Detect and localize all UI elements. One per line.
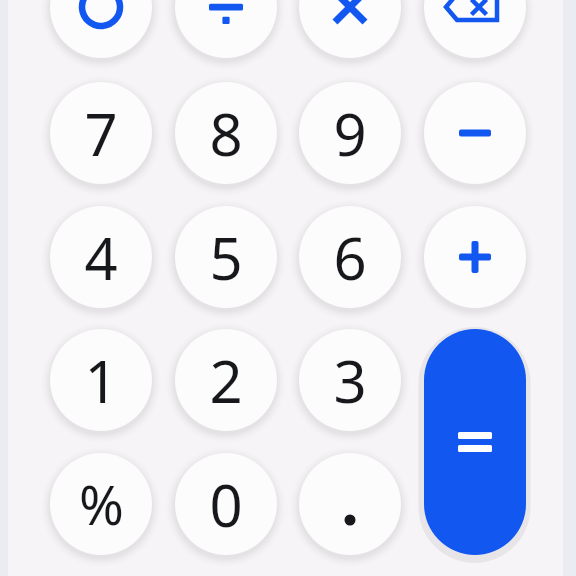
staticText: 2 bbox=[209, 341, 243, 420]
button[interactable]: Decimal point bbox=[299, 453, 401, 555]
button[interactable]: 2 bbox=[175, 329, 277, 431]
staticText: 8 bbox=[209, 94, 243, 173]
staticText: 5 bbox=[209, 218, 243, 297]
button[interactable]: 7 bbox=[50, 82, 152, 184]
button[interactable]: Clear bbox=[50, 0, 152, 58]
staticText: 7 bbox=[84, 94, 118, 173]
staticText: 9 bbox=[333, 94, 367, 173]
button[interactable]: Multiply bbox=[299, 0, 401, 58]
button[interactable]: 9 bbox=[299, 82, 401, 184]
staticText: 1 bbox=[84, 341, 118, 420]
button[interactable]: Plus bbox=[424, 206, 526, 308]
button[interactable]: % bbox=[50, 453, 152, 555]
button[interactable]: 3 bbox=[299, 329, 401, 431]
button[interactable]: Equals bbox=[424, 329, 526, 555]
staticText: 6 bbox=[333, 218, 367, 297]
staticText: % bbox=[79, 467, 124, 541]
staticText: 0 bbox=[209, 465, 243, 544]
button[interactable]: Backspace bbox=[424, 0, 526, 58]
staticText: 4 bbox=[84, 218, 118, 297]
button[interactable]: 1 bbox=[50, 329, 152, 431]
button[interactable]: 4 bbox=[50, 206, 152, 308]
button[interactable]: 6 bbox=[299, 206, 401, 308]
button[interactable]: 8 bbox=[175, 82, 277, 184]
staticText: 3 bbox=[333, 341, 367, 420]
button[interactable]: Minus bbox=[424, 82, 526, 184]
button[interactable]: 0 bbox=[175, 453, 277, 555]
button[interactable]: 5 bbox=[175, 206, 277, 308]
button[interactable]: Divide bbox=[175, 0, 277, 58]
